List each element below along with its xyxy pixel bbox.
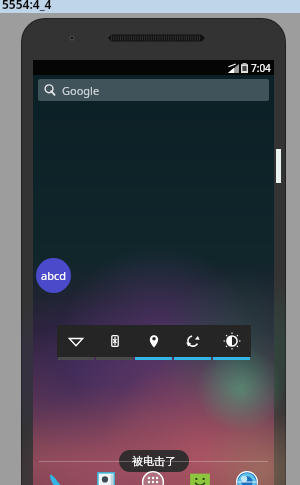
button[interactable]: Wi-Fi xyxy=(57,325,95,357)
button[interactable]: Contacts xyxy=(83,462,129,485)
staticText: 7:04 xyxy=(251,61,271,75)
button[interactable]: Bluetooth xyxy=(95,325,134,357)
button[interactable]: Phone xyxy=(37,462,83,485)
staticText: 5554:4_4 xyxy=(2,0,52,12)
button[interactable]: abcd xyxy=(36,258,71,293)
button[interactable]: Browser xyxy=(223,462,270,485)
button[interactable]: Location xyxy=(134,325,173,357)
button[interactable]: Brightness xyxy=(212,325,251,357)
button[interactable]: Sync xyxy=(173,325,212,357)
staticText: 被电击了 xyxy=(132,454,176,468)
staticText: Google xyxy=(62,83,100,98)
button[interactable]: Apps xyxy=(129,462,176,485)
button[interactable]: Messaging xyxy=(176,462,223,485)
staticText: abcd xyxy=(41,268,66,283)
button[interactable]: Google xyxy=(38,79,269,101)
